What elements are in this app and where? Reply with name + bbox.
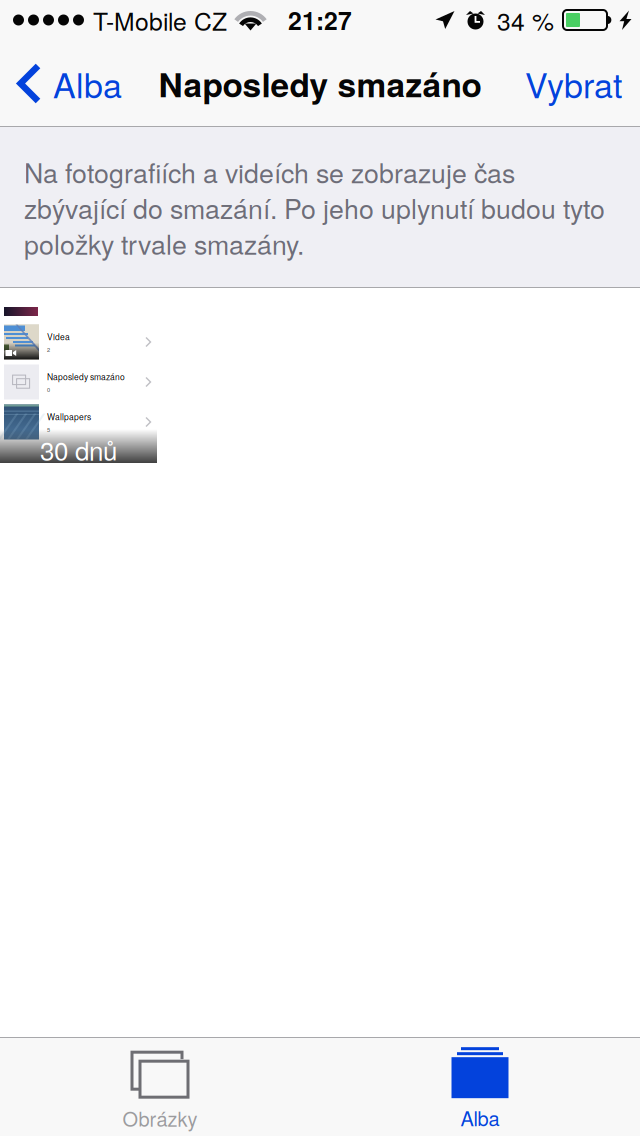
staticText: 2 [47,346,50,354]
staticText: Vybrat [525,59,622,108]
staticText: 21:27 [288,2,352,38]
staticText: Na fotografiích a videích se zobrazuje č… [24,154,605,261]
staticText: 34 % [497,2,554,38]
button[interactable]: Alba [320,1037,640,1136]
staticText: 5 [47,426,50,434]
staticText: Alba [53,59,122,108]
staticText: Wallpapers [47,410,91,423]
staticText: Obrázky [122,1104,197,1132]
staticText: 0 [47,386,50,394]
staticText: Naposledy smazáno [47,370,125,383]
button[interactable]: Vybrat [507,40,640,127]
button[interactable]: Obrázky [0,1037,320,1136]
staticText: T-Mobile CZ [93,2,227,38]
button[interactable]: Alba [0,40,134,127]
staticText: 30 dnů [40,431,117,468]
staticText: Naposledy smazáno [158,59,481,107]
staticText: Videa [47,330,70,343]
staticText: Alba [460,1103,499,1132]
